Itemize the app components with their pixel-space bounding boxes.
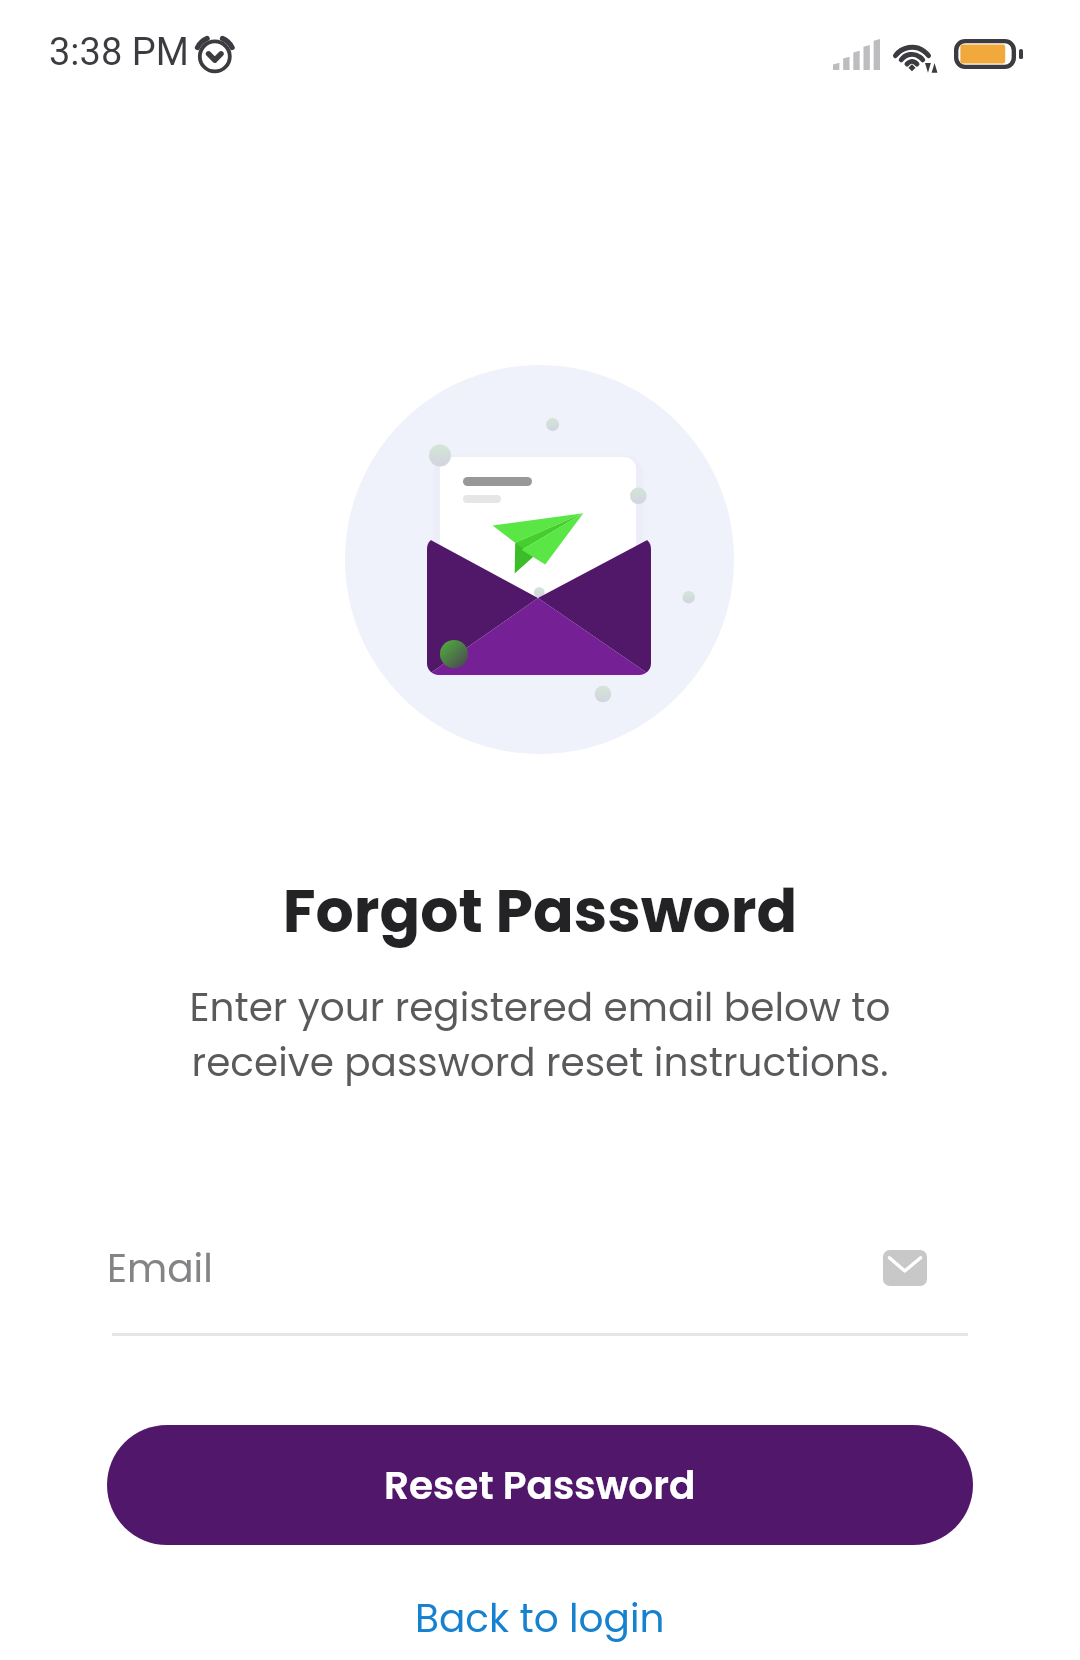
staticText: 3:38 PM — [49, 30, 189, 75]
staticText: Enter your registered email below to rec… — [0, 980, 1080, 1090]
button[interactable]: Email — [107, 1232, 968, 1336]
staticText: Forgot Password — [0, 869, 1080, 953]
staticText: Reset Password — [384, 1458, 696, 1513]
button[interactable]: Back to login — [391, 1583, 689, 1654]
staticText: Email — [107, 1241, 213, 1296]
button[interactable]: Email — [883, 1250, 927, 1286]
button[interactable]: Reset Password — [107, 1425, 973, 1545]
staticText: Back to login — [415, 1591, 665, 1646]
